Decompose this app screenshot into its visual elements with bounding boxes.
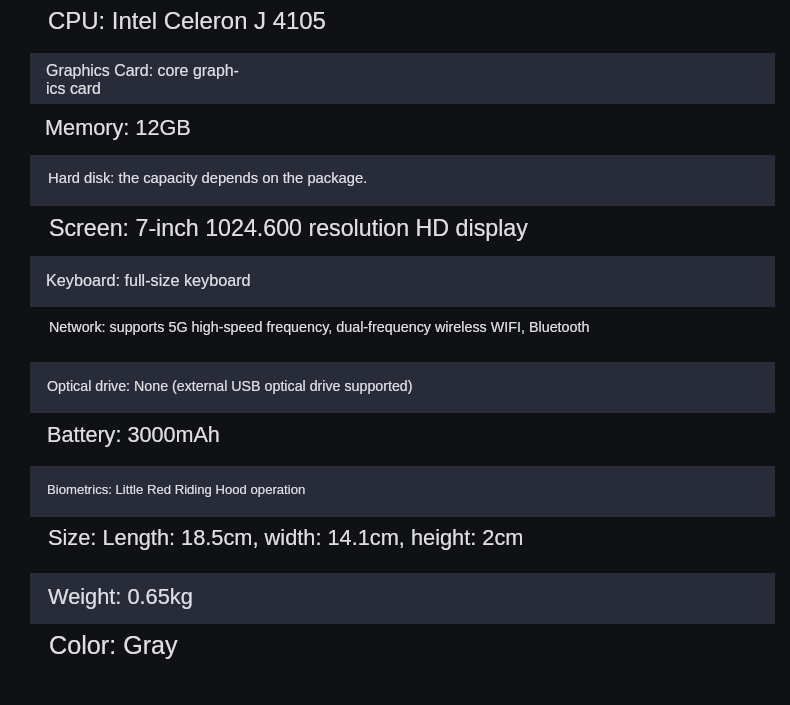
staticText: Size: Length: 18.5cm, width: 14.1cm, hei… [48,525,524,549]
staticText: Color: Gray [49,631,178,659]
staticText: Hard disk: the capacity depends on the p… [48,170,368,187]
staticText: CPU: Intel Celeron J 4105 [48,7,326,34]
button[interactable]: Hard disk: the capacity depends on the p… [30,155,775,206]
button[interactable]: Keyboard: full-size keyboard [30,256,775,307]
staticText: Keyboard: full-size keyboard [46,271,251,289]
button[interactable]: Network: supports 5G high-speed frequenc… [30,307,775,362]
button[interactable]: CPU: Intel Celeron J 4105 [30,0,775,53]
staticText: Graphics Card: core graph- ics card [46,62,239,97]
button[interactable]: Screen: 7-inch 1024.600 resolution HD di… [30,206,775,256]
button[interactable]: Optical drive: None (external USB optica… [30,362,775,413]
staticText: Network: supports 5G high-speed frequenc… [49,319,590,335]
staticText: Optical drive: None (external USB optica… [47,378,413,394]
staticText: Screen: 7-inch 1024.600 resolution HD di… [49,215,528,241]
button[interactable]: Weight: 0.65kg [30,573,775,624]
button[interactable]: Graphics Card: core graph- ics card [30,53,775,104]
button[interactable]: Color: Gray [30,624,775,675]
button[interactable]: Battery: 3000mAh [30,413,775,466]
staticText: Biometrics: Little Red Riding Hood opera… [47,482,306,497]
staticText: Weight: 0.65kg [48,584,193,608]
staticText: Memory: 12GB [45,115,191,139]
button[interactable]: Size: Length: 18.5cm, width: 14.1cm, hei… [30,517,775,573]
button[interactable]: Memory: 12GB [30,104,775,155]
button[interactable]: Biometrics: Little Red Riding Hood opera… [30,466,775,517]
staticText: Battery: 3000mAh [47,422,220,446]
